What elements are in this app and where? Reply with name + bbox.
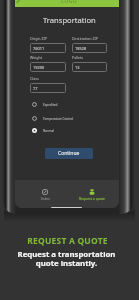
button[interactable]: 18528 xyxy=(72,43,107,53)
staticText: REQUEST A QUOTE xyxy=(0,235,137,247)
button[interactable]: 76011 xyxy=(30,43,66,53)
staticText: Expedited xyxy=(43,103,58,107)
staticText: Class xyxy=(30,76,39,81)
button[interactable]: 13 xyxy=(72,62,107,72)
staticText: Origin ZIP xyxy=(30,36,47,41)
button[interactable]: Request a quote xyxy=(72,189,112,201)
staticText: Transportation xyxy=(43,15,96,25)
staticText: Continue xyxy=(58,150,80,157)
button[interactable]: Continue xyxy=(45,148,93,159)
staticText: 18528 xyxy=(75,46,87,51)
staticText: 19200 xyxy=(33,65,45,70)
button[interactable]: Expedited xyxy=(32,100,112,109)
staticText: Normal xyxy=(43,129,54,133)
staticText: Request a quote xyxy=(79,196,105,201)
button[interactable]: Index xyxy=(25,189,65,201)
staticText: Temperature Control xyxy=(43,117,74,121)
staticText: 77 xyxy=(33,86,38,91)
staticText: Request a transportation quote instantly… xyxy=(0,249,136,269)
staticText: Pallets xyxy=(72,55,84,60)
staticText: 76011 xyxy=(33,46,45,51)
button[interactable]: 19200 xyxy=(30,62,66,72)
button[interactable]: Normal xyxy=(32,126,112,135)
staticText: 13 xyxy=(75,65,80,70)
staticText: Destination ZIP xyxy=(72,36,98,41)
staticText: LOGO xyxy=(61,0,78,5)
button[interactable]: 77 xyxy=(30,83,66,93)
button[interactable]: Temperature Control xyxy=(32,114,112,123)
staticText: Weight xyxy=(30,55,42,60)
staticText: Index xyxy=(41,196,50,201)
